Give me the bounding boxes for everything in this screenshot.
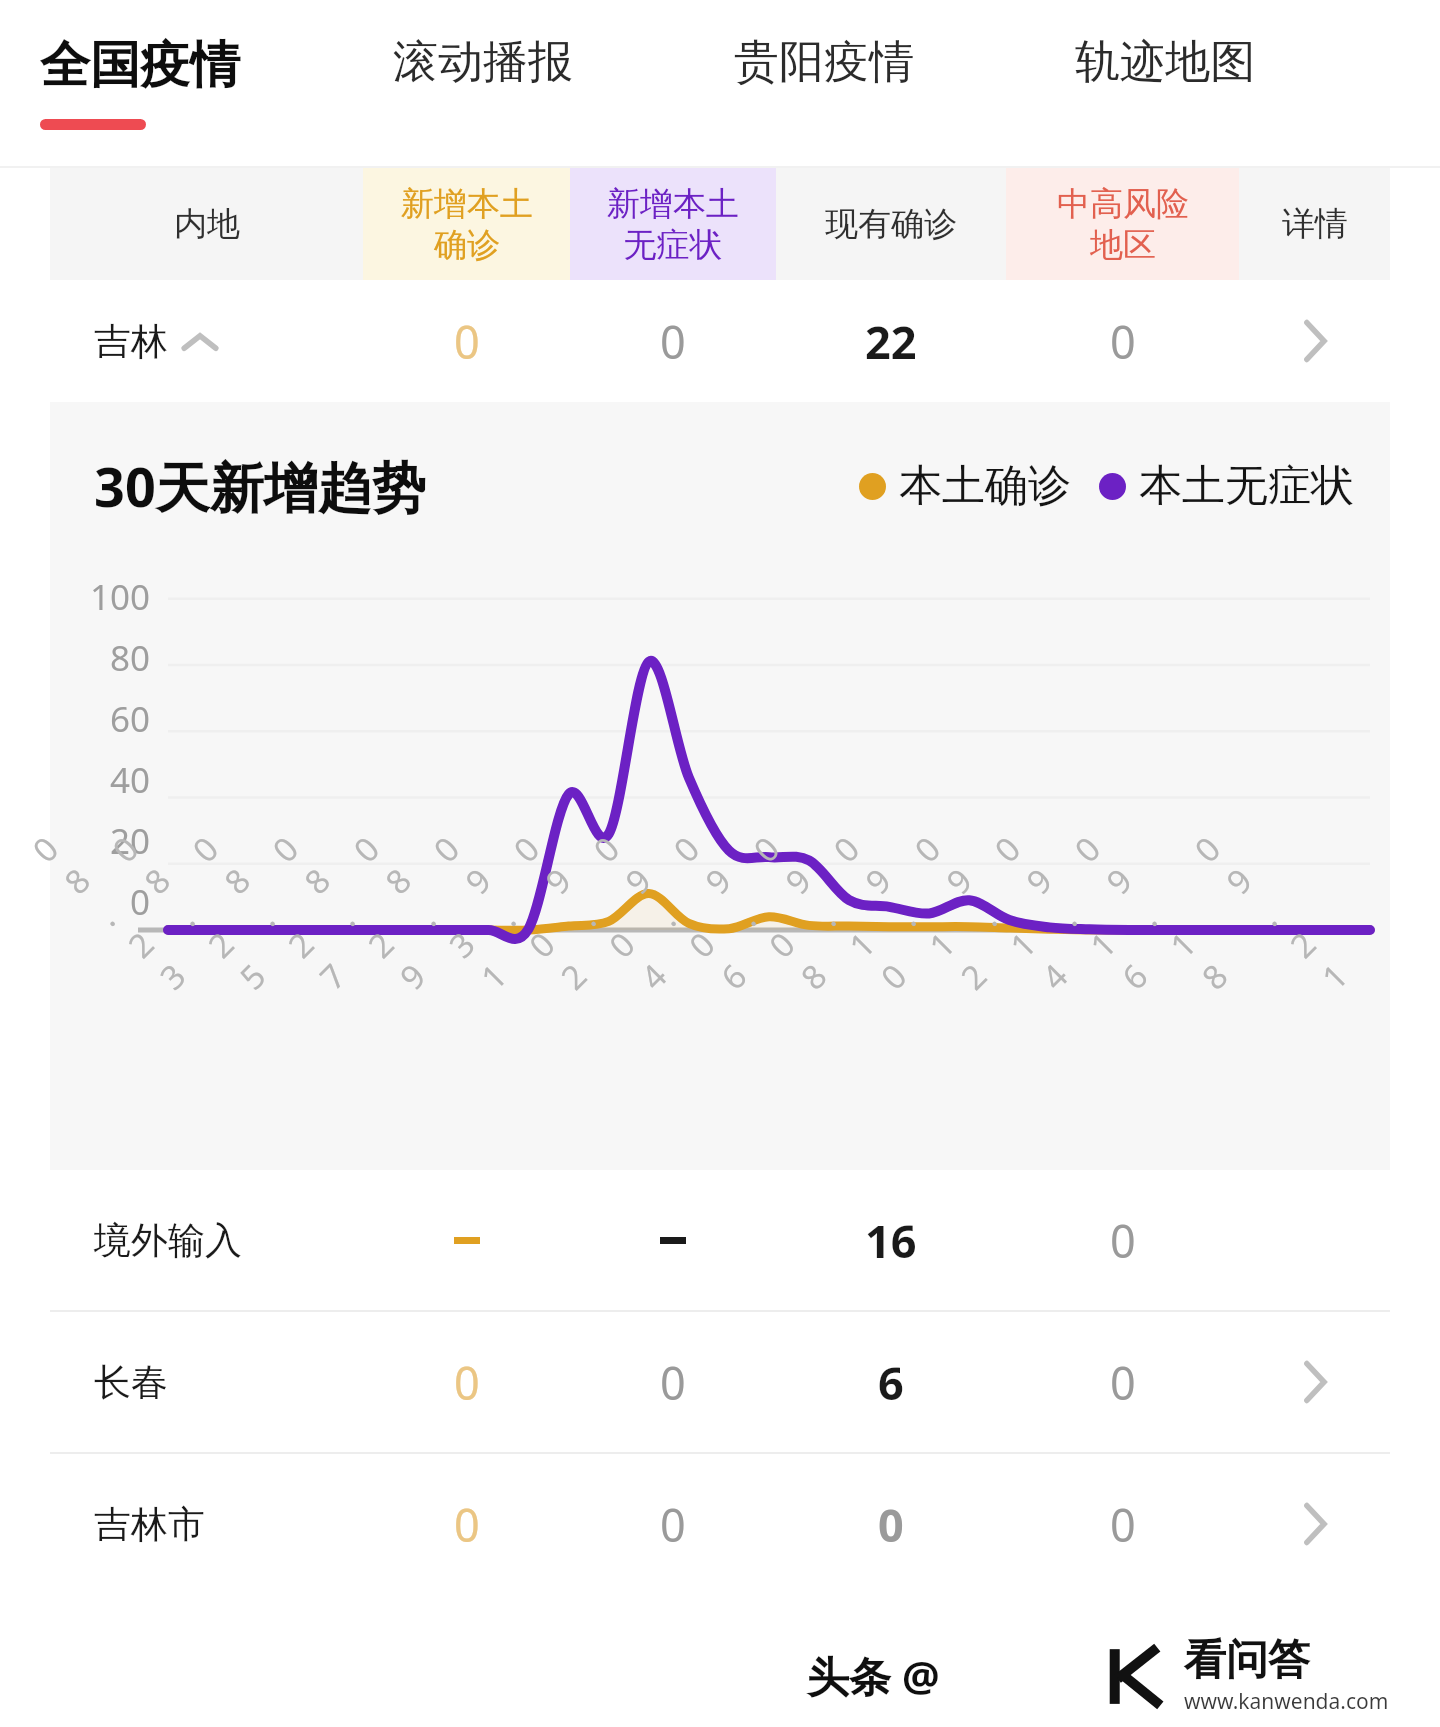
staticText: 长春 [94,1359,168,1406]
button[interactable]: 吉林市 详情 [1279,1488,1351,1560]
button[interactable]: 详情 [1239,168,1390,280]
staticText: 头条 @ [807,1647,940,1704]
staticText: 新增本土 确诊 [401,183,533,266]
staticText: 0 [454,1494,480,1555]
staticText: 0 [660,1352,686,1413]
button[interactable]: 长春 详情 [1279,1346,1351,1418]
button[interactable]: 现有确诊 [776,168,1006,280]
staticText: 新增本土 无症状 [607,183,739,266]
staticText: 16 [865,1210,917,1271]
button[interactable]: 本土确诊 [859,459,1071,513]
button[interactable]: 吉林 详情 [1279,305,1351,377]
staticText: 0 [660,1494,686,1555]
staticText: 看问答 [1184,1634,1310,1687]
button[interactable]: 新增本土 确诊 [363,168,570,280]
button[interactable]: 全国疫情 [40,0,393,168]
staticText: 6 [878,1352,904,1413]
staticText: 20 [109,817,150,865]
staticText: 现有确诊 [825,203,957,245]
staticText: 0 [1110,311,1136,372]
staticText: www.kanwenda.com [1184,1687,1389,1716]
staticText: 0 [129,878,150,926]
staticText: 0 [454,311,480,372]
staticText: 60 [109,695,150,743]
staticText: 0 [1110,1352,1136,1413]
staticText: 贵阳疫情 [734,34,914,91]
staticText: 0 [878,1494,904,1555]
button[interactable]: 境外输入 [0,1170,1440,1310]
staticText: 0 [454,1352,480,1413]
button[interactable]: 吉林 [0,280,1440,402]
staticText: 中高风险 地区 [1057,183,1189,266]
staticText: 境外输入 [94,1217,242,1264]
staticText: 本土确诊 [899,459,1071,513]
staticText: 内地 [174,203,240,245]
button[interactable]: 新增本土 无症状 [570,168,776,280]
staticText: 30天新增趋势 [94,449,426,523]
staticText: 本土无症状 [1139,459,1354,513]
staticText: 0 [1110,1494,1136,1555]
staticText: 22 [865,311,917,372]
staticText: 吉林 [94,318,168,365]
staticText: 滚动播报 [393,34,573,91]
button[interactable]: 吉林市 [0,1454,1440,1594]
staticText: 吉林市 [94,1501,205,1548]
button[interactable]: 内地 [50,168,363,280]
button[interactable]: 贵阳疫情 [734,0,1075,168]
staticText: 100 [89,573,150,621]
staticText: 0 [1110,1210,1136,1271]
button[interactable]: 中高风险 地区 [1006,168,1239,280]
button[interactable]: 本土无症状 [1099,459,1354,513]
button[interactable]: 滚动播报 [393,0,734,168]
staticText: 80 [109,634,150,682]
button[interactable]: 长春 [0,1312,1440,1452]
staticText: 详情 [1282,203,1348,245]
staticText: 40 [109,756,150,804]
staticText: 0 [660,311,686,372]
button[interactable]: 轨迹地图 [1075,0,1416,168]
staticText: 轨迹地图 [1075,34,1255,91]
staticText: 全国疫情 [40,34,240,97]
